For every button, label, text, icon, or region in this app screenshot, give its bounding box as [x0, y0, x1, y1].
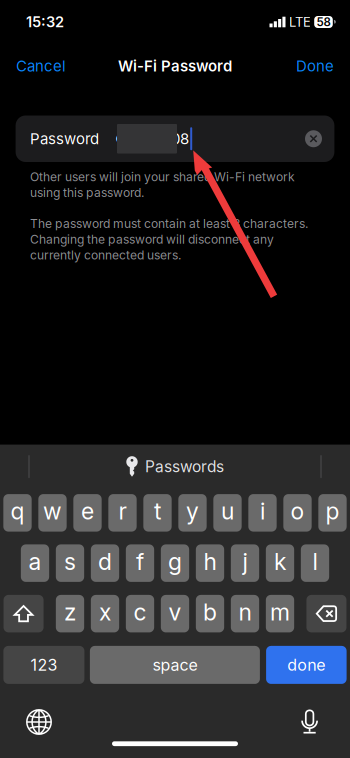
staticText: Done	[296, 57, 334, 75]
staticText: space	[152, 655, 197, 675]
staticText: x	[99, 598, 111, 626]
staticText: Password	[30, 130, 99, 148]
staticText: Passwords	[145, 457, 224, 476]
button[interactable]: u	[213, 494, 242, 532]
staticText: l	[312, 548, 317, 575]
button[interactable]: h	[196, 544, 224, 582]
button[interactable]: Passwords	[126, 456, 224, 477]
button[interactable]: space	[90, 646, 260, 684]
staticText: ●●●●08	[115, 130, 189, 148]
staticText: y	[186, 497, 199, 525]
button[interactable]: a	[21, 544, 49, 582]
staticText: u	[221, 497, 234, 525]
button[interactable]: j	[231, 544, 259, 582]
button[interactable]: c	[126, 595, 154, 632]
button[interactable]: s	[56, 544, 84, 582]
button[interactable]: Delete	[306, 595, 346, 632]
staticText: q	[10, 497, 24, 525]
staticText: o	[290, 497, 304, 525]
button[interactable]: Cancel	[16, 57, 66, 75]
staticText: The password must contain at least 8 cha…	[30, 216, 308, 262]
button[interactable]: t	[143, 494, 172, 532]
staticText: j	[242, 548, 247, 575]
staticText: h	[203, 548, 216, 575]
button[interactable]: x	[91, 595, 119, 632]
staticText: 15:32	[26, 13, 64, 31]
staticText: LTE	[289, 14, 311, 30]
button[interactable]: g	[161, 544, 189, 582]
button[interactable]: i	[248, 494, 277, 532]
button[interactable]: l	[301, 544, 329, 582]
button[interactable]: Shift	[3, 595, 43, 632]
staticText: a	[28, 548, 41, 575]
button[interactable]: d	[91, 544, 119, 582]
button[interactable]: n	[231, 595, 259, 632]
staticText: m	[270, 598, 290, 626]
button[interactable]: f	[126, 544, 154, 582]
button[interactable]: v	[161, 595, 189, 632]
staticText: done	[287, 655, 325, 675]
staticText: k	[274, 548, 286, 575]
button[interactable]: r	[108, 494, 137, 532]
staticText: e	[81, 497, 94, 525]
button[interactable]: w	[38, 494, 67, 532]
staticText: 123	[30, 655, 57, 675]
button[interactable]: e	[73, 494, 102, 532]
button[interactable]: p	[318, 494, 347, 532]
button[interactable]: Switch keyboard	[26, 709, 52, 735]
button[interactable]: k	[266, 544, 294, 582]
staticText: n	[238, 598, 251, 626]
button[interactable]: Done	[296, 57, 334, 75]
staticText: f	[136, 548, 144, 575]
button[interactable]: 123	[3, 646, 84, 684]
staticText: i	[260, 497, 265, 525]
button[interactable]: o	[283, 494, 312, 532]
button[interactable]: y	[178, 494, 207, 532]
staticText: 58	[316, 15, 330, 29]
staticText: Other users will join your shared Wi-Fi …	[30, 169, 295, 200]
staticText: w	[43, 497, 62, 525]
button[interactable]: b	[196, 595, 224, 632]
staticText: t	[154, 497, 161, 525]
staticText: d	[98, 548, 112, 575]
staticText: c	[133, 598, 146, 626]
staticText: b	[203, 598, 217, 626]
staticText: r	[118, 497, 126, 525]
staticText: Wi-Fi Password	[118, 57, 232, 75]
button[interactable]: Dictation	[301, 708, 318, 735]
button[interactable]: q	[3, 494, 32, 532]
staticText: g	[168, 548, 182, 575]
staticText: v	[168, 598, 181, 626]
button[interactable]: done	[266, 646, 347, 684]
staticText: p	[325, 497, 339, 525]
button[interactable]: z	[56, 595, 84, 632]
staticText: s	[64, 548, 76, 575]
staticText: Cancel	[16, 57, 66, 75]
staticText: z	[64, 598, 76, 626]
button[interactable]: m	[266, 595, 294, 632]
